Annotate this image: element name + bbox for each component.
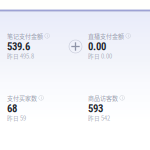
- staticText: ⓘ: [125, 33, 130, 39]
- staticText: 笔记支付金额: [7, 32, 43, 40]
- button[interactable]: 笔记支付金额: [7, 31, 67, 60]
- staticText: 0.00: [88, 40, 106, 53]
- staticText: 昨日 0.00: [88, 52, 112, 60]
- staticText: 539.6: [7, 40, 30, 53]
- staticText: ⓘ: [44, 33, 49, 39]
- staticText: ⓘ: [119, 95, 124, 101]
- staticText: 支付买家数: [7, 94, 37, 102]
- staticText: ⓘ: [38, 95, 43, 101]
- button[interactable]: 商品访客数: [88, 93, 148, 122]
- staticText: 593: [88, 102, 103, 115]
- button[interactable]: 支付买家数: [7, 93, 67, 122]
- staticText: 商品访客数: [88, 94, 118, 102]
- button[interactable]: 直播支付金额: [88, 31, 148, 60]
- staticText: 昨日 542: [88, 114, 110, 122]
- staticText: 68: [7, 102, 17, 115]
- staticText: 昨日 495.8: [7, 52, 34, 60]
- button[interactable]: Add metric: [69, 40, 82, 53]
- staticText: 昨日 59: [7, 114, 26, 122]
- staticText: 直播支付金额: [88, 32, 124, 40]
